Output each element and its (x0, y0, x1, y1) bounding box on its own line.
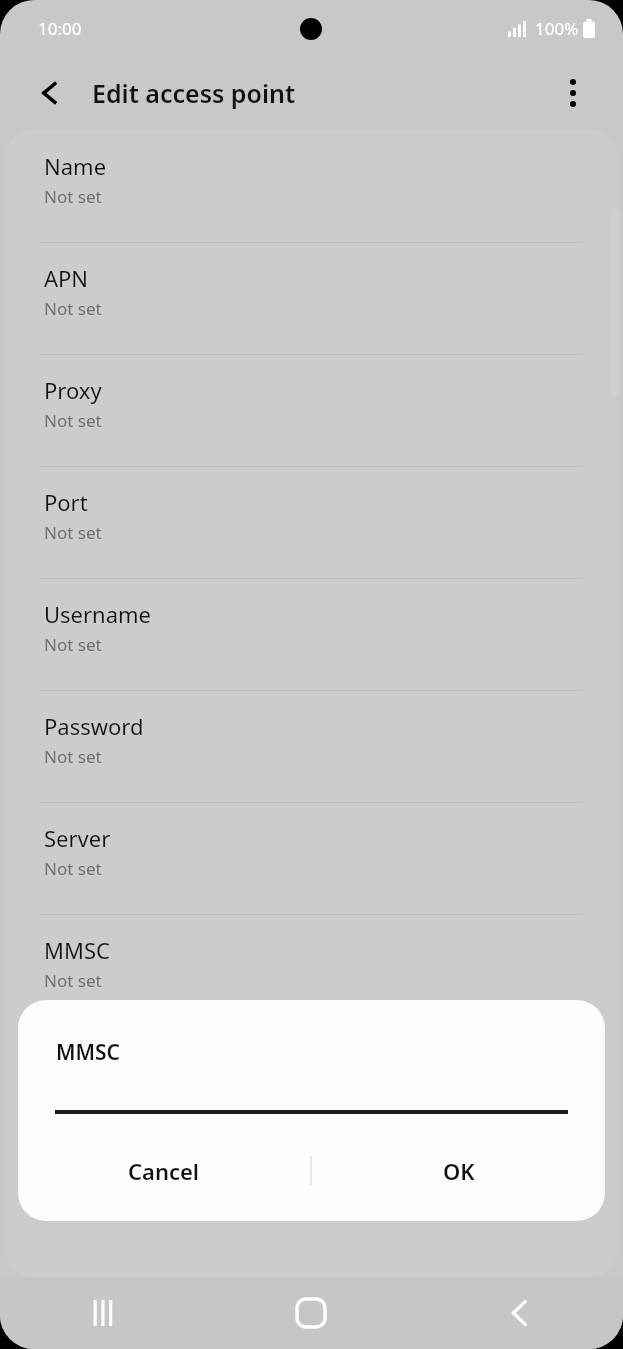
staticText: Not set (44, 969, 102, 992)
staticText: MMS proxy (44, 1047, 160, 1077)
button[interactable]: OK (312, 1142, 605, 1200)
button[interactable]: MMS proxy (6, 1026, 617, 1138)
button[interactable]: Proxy (6, 354, 617, 466)
staticText: Port (44, 487, 88, 517)
staticText: Not set (44, 297, 102, 320)
staticText: Not set (44, 185, 102, 208)
staticText: APN (44, 263, 89, 293)
staticText: Server (44, 823, 111, 853)
button[interactable]: Back (415, 1277, 623, 1349)
button[interactable]: MMS port (6, 1138, 617, 1250)
staticText: Not set (44, 633, 102, 656)
staticText: MMSC (56, 1038, 120, 1067)
button[interactable]: Username (6, 578, 617, 690)
staticText: 10:00 (38, 17, 82, 40)
staticText: Not set (44, 521, 102, 544)
staticText: Not set (44, 857, 102, 880)
staticText: Proxy (44, 375, 102, 405)
staticText: Name (44, 151, 107, 181)
staticText: Password (44, 711, 144, 741)
staticText: MMSC (44, 935, 110, 965)
button[interactable]: Name (6, 130, 617, 242)
button[interactable]: More options (549, 69, 597, 117)
staticText: 100% (535, 17, 579, 40)
staticText: OK (443, 1156, 475, 1186)
staticText: Username (44, 599, 152, 629)
button[interactable]: Port (6, 466, 617, 578)
staticText: Not set (44, 745, 102, 768)
staticText: Not set (44, 409, 102, 432)
staticText: Edit access point (92, 76, 296, 110)
button[interactable]: Cancel (18, 1142, 310, 1200)
button[interactable]: MMSC (6, 914, 617, 1026)
button[interactable]: APN (6, 242, 617, 354)
button[interactable]: Server (6, 802, 617, 914)
button[interactable]: Home (207, 1277, 415, 1349)
staticText: Cancel (128, 1156, 200, 1186)
button[interactable]: Back (24, 67, 76, 119)
button[interactable]: Recent apps (0, 1277, 207, 1349)
button[interactable]: Password (6, 690, 617, 802)
staticText: MMS port (44, 1159, 146, 1189)
